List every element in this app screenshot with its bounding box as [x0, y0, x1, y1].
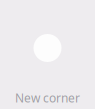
button[interactable]: New corner	[0, 0, 95, 109]
staticText: New corner	[15, 90, 80, 106]
